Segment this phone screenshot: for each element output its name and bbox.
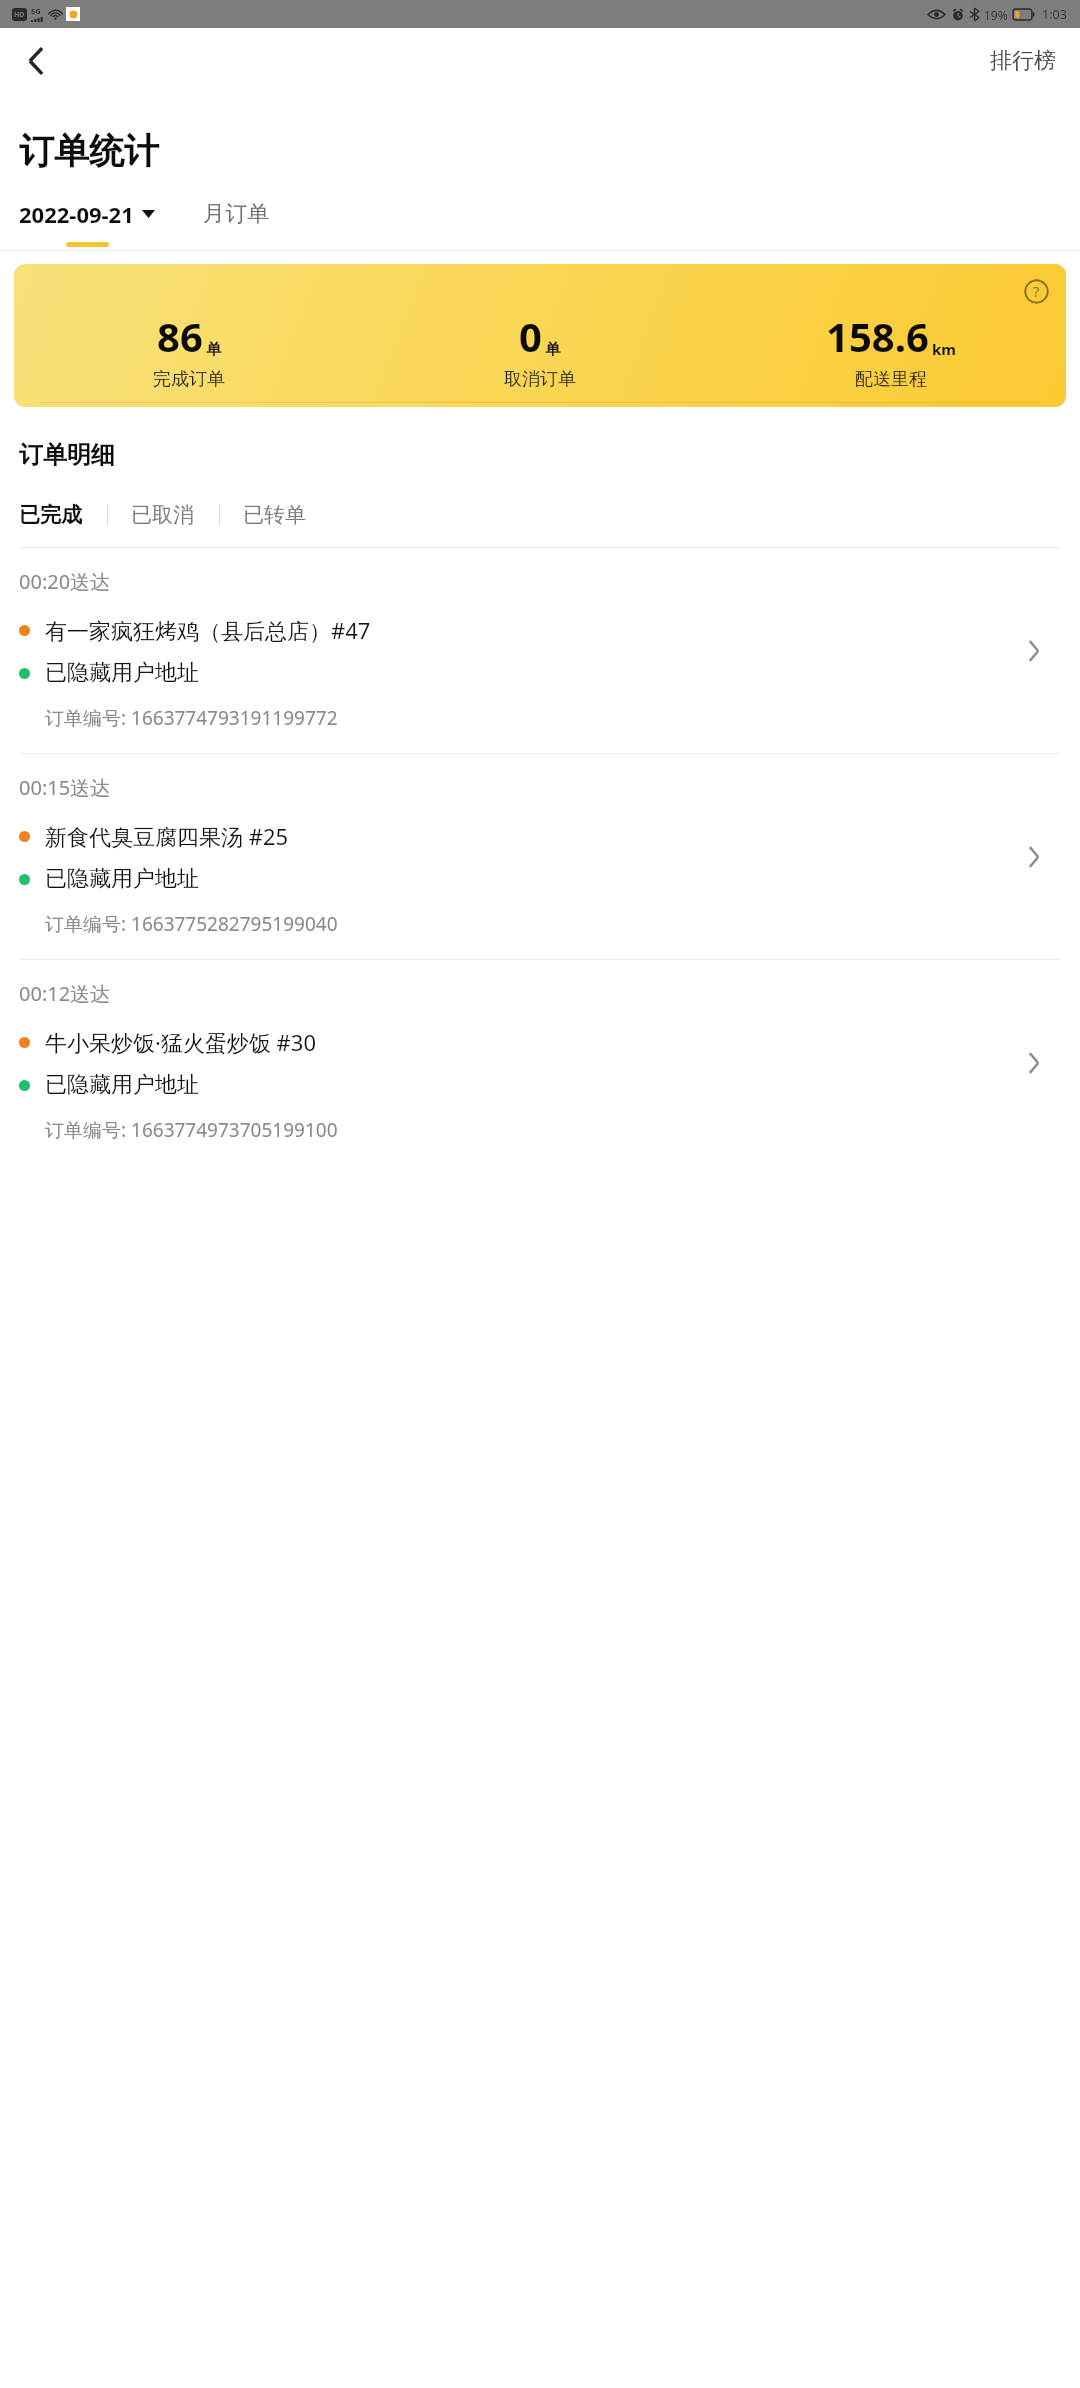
- staticText: 已转单: [243, 502, 306, 528]
- staticText: 已完成: [19, 502, 82, 528]
- staticText: ?: [1033, 281, 1040, 301]
- staticText: 158.6: [826, 309, 929, 363]
- staticText: 2022-09-21: [19, 199, 134, 229]
- staticText: 月订单: [203, 200, 269, 228]
- button[interactable]: 已转单: [243, 502, 308, 528]
- staticText: 1:03: [1042, 6, 1067, 23]
- staticText: 配送里程: [855, 368, 927, 391]
- staticText: 86: [157, 309, 203, 363]
- staticText: 新食代臭豆腐四果汤 #25: [45, 821, 289, 851]
- button[interactable]: 排行榜: [984, 39, 1062, 83]
- staticText: HD: [14, 10, 25, 20]
- button[interactable]: 2022-09-21: [19, 199, 155, 247]
- staticText: 取消订单: [504, 368, 576, 391]
- button[interactable]: 已完成: [19, 502, 84, 528]
- button[interactable]: 已取消: [131, 502, 196, 528]
- button[interactable]: 00:15送达: [0, 754, 1080, 959]
- staticText: 牛小呆炒饭·猛火蛋炒饭 #30: [45, 1027, 316, 1057]
- staticText: 订单编号: 1663775282795199040: [45, 911, 338, 937]
- staticText: 已隐藏用户地址: [45, 659, 199, 687]
- staticText: 单: [206, 340, 221, 359]
- staticText: 5G: [31, 6, 41, 16]
- staticText: 有一家疯狂烤鸡（县后总店）#47: [45, 615, 371, 645]
- button[interactable]: 00:20送达: [0, 548, 1080, 753]
- staticText: 00:12送达: [19, 980, 111, 1007]
- staticText: 完成订单: [153, 368, 225, 391]
- staticText: 0: [519, 309, 542, 363]
- staticText: 已取消: [131, 502, 194, 528]
- button[interactable]: Back: [10, 35, 62, 87]
- staticText: 00:15送达: [19, 774, 111, 801]
- button[interactable]: Help: [1019, 274, 1053, 308]
- staticText: 订单编号: 1663774793191199772: [45, 705, 338, 731]
- button[interactable]: 月订单: [199, 209, 273, 237]
- staticText: 19%: [984, 7, 1008, 23]
- staticText: 00:20送达: [19, 568, 111, 595]
- staticText: 已隐藏用户地址: [45, 1071, 199, 1099]
- staticText: km: [932, 339, 956, 359]
- button[interactable]: 00:12送达: [0, 960, 1080, 1165]
- button[interactable]: Help: [14, 264, 1066, 407]
- staticText: 单: [545, 340, 560, 359]
- staticText: 排行榜: [990, 47, 1056, 75]
- staticText: 订单编号: 1663774973705199100: [45, 1117, 338, 1143]
- staticText: 已隐藏用户地址: [45, 865, 199, 893]
- staticText: 订单明细: [19, 440, 115, 470]
- staticText: 订单统计: [19, 129, 159, 173]
